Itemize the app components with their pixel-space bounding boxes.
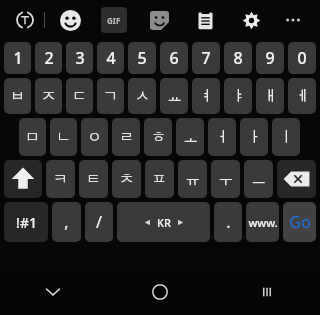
button[interactable]: ㅠ [178,160,207,198]
button[interactable]: ㅑ [224,78,252,114]
staticText: ㅛ [167,87,182,106]
button[interactable]: Clipboard [191,6,219,34]
button[interactable]: 9 [256,42,284,74]
button[interactable]: ㅓ [208,118,236,156]
staticText: ㅣ [279,128,294,147]
button[interactable]: 5 [128,42,156,74]
staticText: ㅊ [119,170,134,189]
staticText: ㄷ [72,87,87,106]
button[interactable]: 8 [224,42,252,74]
staticText: 1 [13,47,23,69]
button[interactable]: Settings [237,6,265,34]
button[interactable]: !#1 [4,202,48,242]
button[interactable]: ㄴ [50,118,77,156]
button[interactable]: Emoji [55,5,85,35]
button[interactable]: 3 [66,42,93,74]
staticText: ㅓ [215,128,230,147]
button[interactable]: ㅌ [79,160,108,198]
staticText: 7 [201,47,211,69]
button[interactable]: 4 [97,42,124,74]
staticText: 5 [137,47,147,69]
staticText: 6 [169,47,179,69]
button[interactable]: ㅜ [211,160,240,198]
button[interactable]: ㅍ [145,160,174,198]
staticText: ㄴ [56,128,71,147]
staticText: 3 [75,47,85,69]
button[interactable]: ㅋ [46,160,75,198]
staticText: ㅕ [199,87,214,106]
button[interactable]: ㅡ [244,160,273,198]
staticText: . [226,211,231,233]
staticText: ㅅ [135,87,150,106]
button[interactable]: 1 [4,42,31,74]
staticText: 4 [106,47,116,69]
button[interactable]: ㅛ [160,78,188,114]
staticText: ㅔ [295,87,310,106]
button[interactable]: / [85,202,113,242]
button[interactable]: ㅕ [192,78,220,114]
button[interactable]: ㅇ [81,118,108,156]
button[interactable]: Recents [213,269,320,315]
staticText: ㄱ [103,87,118,106]
staticText: ㅏ [247,128,262,147]
staticText: / [96,211,102,233]
button[interactable]: Back [0,269,106,315]
staticText: GIF [107,15,121,26]
button[interactable]: ㅎ [144,118,172,156]
staticText: ㅎ [151,128,166,147]
button[interactable]: ㅣ [272,118,300,156]
button[interactable]: Go [283,202,316,242]
button[interactable]: Backspace [277,160,316,198]
button[interactable]: Translate [10,5,40,35]
staticText: www. [248,215,278,230]
staticText: 9 [265,47,275,69]
button[interactable]: 7 [192,42,220,74]
staticText: Go [289,211,311,233]
staticText: KR [157,215,171,230]
staticText: ㅈ [41,87,56,106]
staticText: ㄹ [119,128,134,147]
staticText: !#1 [16,213,37,232]
staticText: ㅠ [185,170,200,189]
staticText: ㅇ [87,128,102,147]
staticText: 2 [44,47,54,69]
button[interactable]: ㅊ [112,160,141,198]
button[interactable]: GIF [101,7,127,33]
button[interactable]: ㅈ [35,78,62,114]
staticText: ㅂ [10,87,25,106]
button[interactable]: Stickers [145,6,173,34]
button[interactable]: Shift [4,160,42,198]
staticText: ㅡ [251,170,266,189]
button[interactable]: 2 [35,42,62,74]
button[interactable]: www. [246,202,279,242]
button[interactable]: ㄱ [97,78,124,114]
button[interactable]: Home [106,269,213,315]
staticText: 8 [233,47,243,69]
button[interactable]: ㅔ [288,78,316,114]
button[interactable]: ㅏ [240,118,268,156]
button[interactable]: ㅁ [19,118,46,156]
button[interactable]: ㅂ [4,78,31,114]
button[interactable]: KR [117,202,210,242]
button[interactable]: . [214,202,242,242]
button[interactable]: ㄹ [112,118,140,156]
staticText: ㅋ [53,170,68,189]
staticText: ㅁ [25,128,40,147]
staticText: ㅗ [183,128,198,147]
staticText: 0 [297,47,307,69]
button[interactable]: 6 [160,42,188,74]
staticText: , [64,211,69,233]
button[interactable]: ㅅ [128,78,156,114]
button[interactable]: , [52,202,81,242]
button[interactable]: 0 [288,42,316,74]
button[interactable]: More options [279,6,307,34]
staticText: ㅌ [86,170,101,189]
button[interactable]: ㅗ [176,118,204,156]
staticText: ㅜ [218,170,233,189]
staticText: ㅑ [231,87,246,106]
button[interactable]: ㅐ [256,78,284,114]
staticText: ㅍ [152,170,167,189]
button[interactable]: ㄷ [66,78,93,114]
staticText: ㅐ [263,87,278,106]
